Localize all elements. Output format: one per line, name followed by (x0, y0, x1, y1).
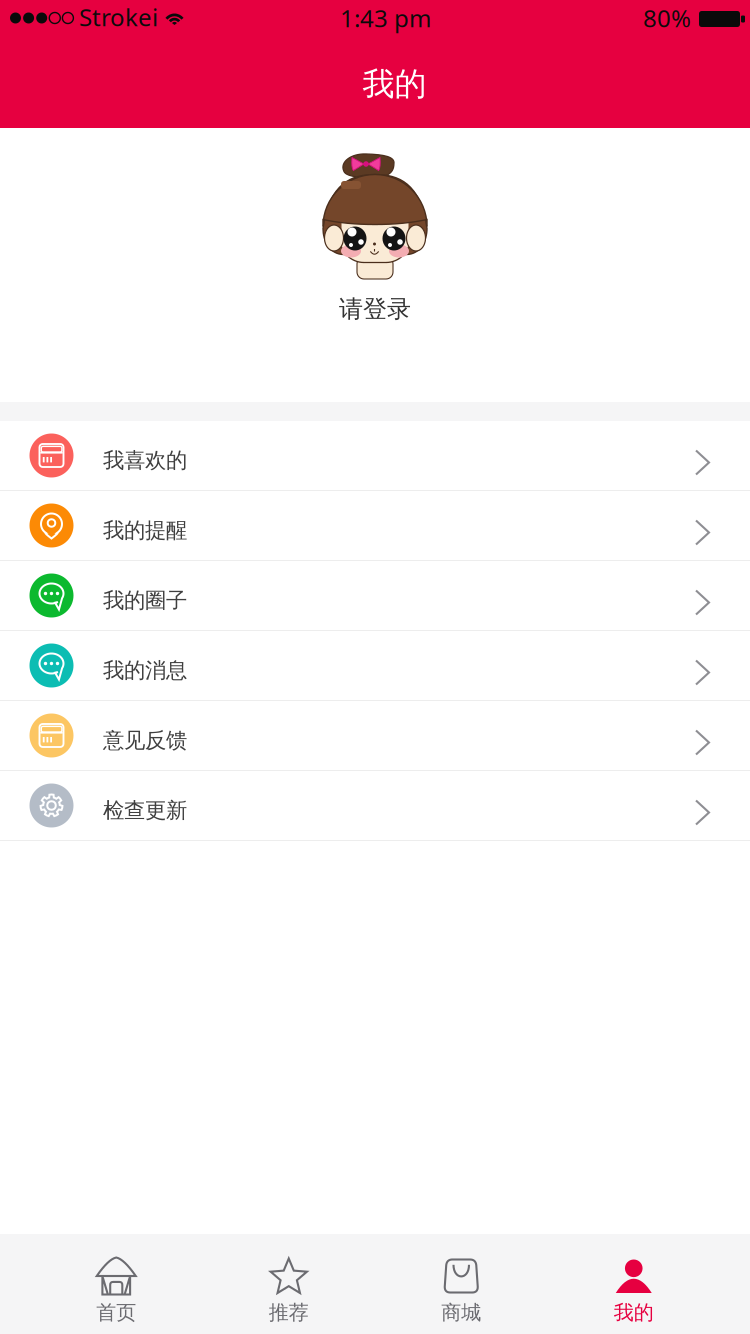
staticText: 检查更新 (103, 797, 187, 824)
staticText: 1:43 pm (340, 2, 431, 34)
button[interactable]: 检查更新 (0, 771, 750, 841)
staticText: 我的 (362, 64, 426, 104)
button[interactable]: 我的圈子 (0, 561, 750, 631)
staticText: 意见反馈 (103, 727, 187, 754)
button[interactable]: 我的提醒 (0, 491, 750, 561)
button[interactable]: 首页 (30, 1234, 202, 1334)
button[interactable]: 推荐 (202, 1234, 375, 1334)
button[interactable]: 我的 (547, 1234, 720, 1334)
staticText: 请登录 (339, 294, 411, 324)
button[interactable]: 请登录 (275, 294, 475, 324)
button[interactable]: 我喜欢的 (0, 421, 750, 491)
staticText: 我的圈子 (103, 587, 187, 614)
button[interactable]: 我的消息 (0, 631, 750, 701)
staticText: 商城 (441, 1300, 481, 1325)
button[interactable]: 意见反馈 (0, 701, 750, 771)
staticText: 我的 (614, 1300, 654, 1325)
button[interactable]: 商城 (375, 1234, 547, 1334)
staticText: 推荐 (269, 1300, 309, 1325)
staticText: 首页 (96, 1300, 136, 1325)
staticText: Strokei (79, 1, 158, 33)
staticText: 我的提醒 (103, 517, 187, 544)
staticText: 80% (643, 2, 691, 34)
staticText: 我的消息 (103, 657, 187, 684)
staticText: 我喜欢的 (103, 447, 187, 474)
